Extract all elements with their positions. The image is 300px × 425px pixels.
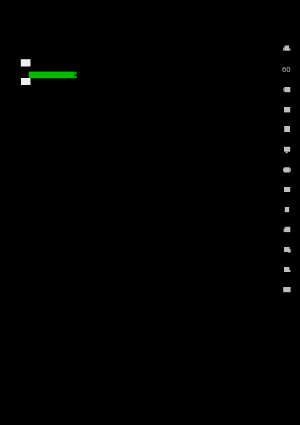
- button[interactable]: Battery: [0, 80, 300, 100]
- button[interactable]: Apps: [0, 120, 300, 140]
- button[interactable]: Notes: [0, 201, 300, 221]
- button[interactable]: 60: [281, 58, 297, 76]
- button[interactable]: Signal strength: [0, 36, 300, 56]
- button[interactable]: Usage summary: [18, 56, 80, 88]
- button[interactable]: Display: [0, 100, 300, 120]
- button[interactable]: More: [0, 281, 300, 301]
- button[interactable]: Media: [0, 161, 300, 181]
- button[interactable]: Files: [0, 221, 300, 241]
- button[interactable]: Messages: [0, 140, 300, 160]
- button[interactable]: Windows: [0, 241, 300, 261]
- button[interactable]: Wallet: [0, 181, 300, 201]
- button[interactable]: Documents: [0, 261, 300, 281]
- staticText: 60: [282, 64, 291, 74]
